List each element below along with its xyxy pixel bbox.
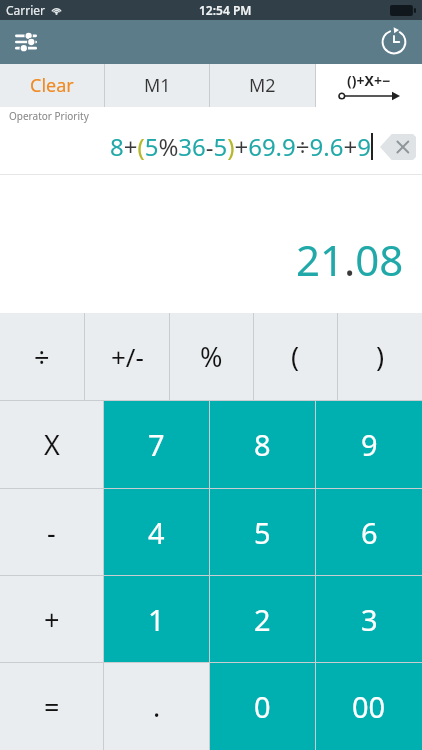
staticText: 2 <box>254 600 271 639</box>
button[interactable]: 8 <box>210 401 315 488</box>
button[interactable]: M1 <box>105 64 209 107</box>
staticText: 1 <box>148 600 165 639</box>
button[interactable]: 0 <box>210 663 315 750</box>
staticText: % <box>200 338 223 375</box>
staticText: 8+(5%36-5)+69.9÷9.6+9 <box>110 130 371 163</box>
staticText: 9 <box>361 425 378 464</box>
button[interactable]: % <box>170 313 253 400</box>
button[interactable]: 00 <box>316 663 422 750</box>
button[interactable]: 3 <box>316 576 422 662</box>
button[interactable]: Delete <box>380 134 416 160</box>
button[interactable]: Operator priority mode <box>316 64 422 107</box>
staticText: = <box>44 688 60 725</box>
button[interactable]: - <box>0 489 103 575</box>
button[interactable]: History <box>374 22 414 62</box>
button[interactable]: ) <box>338 313 422 400</box>
staticText: 0 <box>254 687 271 726</box>
button[interactable]: ( <box>254 313 337 400</box>
button[interactable]: 4 <box>104 489 209 575</box>
button[interactable]: 9 <box>316 401 422 488</box>
staticText: 12:54 PM <box>199 2 252 18</box>
staticText: 21.08 <box>296 231 404 288</box>
staticText: 3 <box>361 600 378 639</box>
button[interactable]: Clear <box>0 64 104 107</box>
staticText: 8 <box>254 425 271 464</box>
staticText: ÷ <box>34 338 50 375</box>
staticText: M2 <box>249 73 276 98</box>
staticText: Operator Priority <box>9 109 89 123</box>
button[interactable]: = <box>0 663 103 750</box>
button[interactable]: . <box>104 663 209 750</box>
button[interactable]: 7 <box>104 401 209 488</box>
staticText: 5 <box>254 513 271 552</box>
staticText: ) <box>376 338 385 375</box>
staticText: - <box>47 514 56 551</box>
staticText: 6 <box>361 513 378 552</box>
button[interactable]: 1 <box>104 576 209 662</box>
button[interactable]: M2 <box>210 64 315 107</box>
button[interactable]: ÷ <box>0 313 84 400</box>
staticText: M1 <box>144 73 171 98</box>
staticText: 4 <box>148 513 165 552</box>
button[interactable]: 5 <box>210 489 315 575</box>
staticText: 00 <box>352 687 386 726</box>
staticText: . <box>153 688 161 725</box>
button[interactable]: 2 <box>210 576 315 662</box>
staticText: ( <box>291 338 300 375</box>
button[interactable]: 6 <box>316 489 422 575</box>
staticText: X <box>44 426 60 463</box>
staticText: + <box>44 601 60 638</box>
button[interactable]: +/- <box>85 313 169 400</box>
staticText: 7 <box>148 425 165 464</box>
button[interactable]: X <box>0 401 103 488</box>
staticText: ()+X+− <box>347 71 391 90</box>
button[interactable]: Settings <box>6 22 46 62</box>
staticText: +/- <box>111 339 144 374</box>
staticText: Carrier <box>6 2 46 18</box>
staticText: Clear <box>30 73 74 98</box>
button[interactable]: + <box>0 576 103 662</box>
